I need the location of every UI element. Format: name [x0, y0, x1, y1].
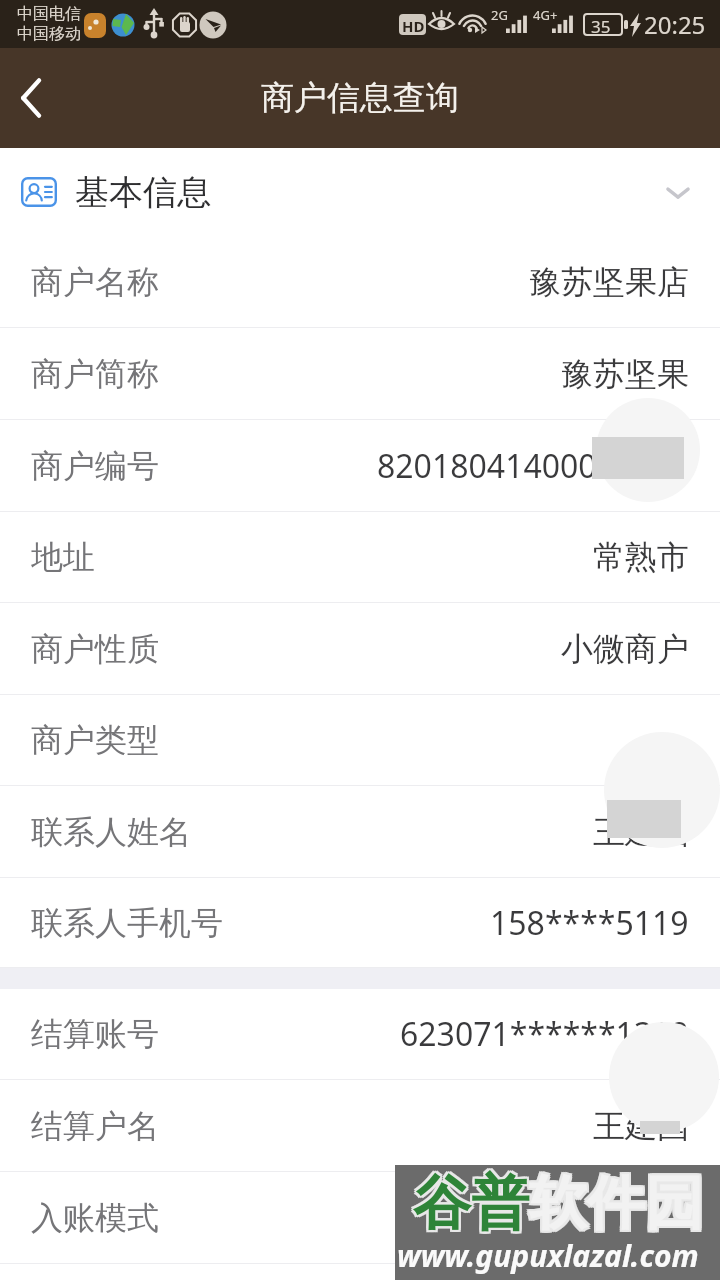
staticText: 商户信息查询 [261, 77, 459, 119]
staticText: 王建国 [593, 1106, 689, 1146]
staticText: 20:25 [644, 8, 706, 41]
staticText: 谷普 [415, 1167, 531, 1240]
staticText: 4G+ [533, 6, 558, 24]
button[interactable]: 地址 [0, 512, 720, 602]
staticText: 结算户名 [31, 1106, 159, 1146]
staticText: 联系人姓名 [31, 812, 191, 852]
button[interactable]: 结算账号 [0, 989, 720, 1079]
button[interactable]: 联系人姓名 [0, 786, 720, 877]
staticText: 豫苏坚果店 [529, 262, 689, 302]
button[interactable]: 基本信息 [0, 148, 720, 236]
staticText: 王建国 [593, 812, 689, 852]
staticText: 谷普 [411, 1165, 527, 1238]
button[interactable]: Collapse basic information [660, 174, 696, 210]
staticText: 小微商户 [561, 629, 689, 669]
staticText: 谷普 [413, 1165, 529, 1238]
staticText: 入账模式 [31, 1198, 159, 1238]
staticText: 2G [491, 6, 508, 24]
staticText: 谷普 [415, 1165, 531, 1238]
button[interactable]: 结算户名 [0, 1080, 720, 1171]
staticText: 商户简称 [31, 354, 159, 394]
staticText: 中国电信 [17, 4, 81, 24]
staticText: 商户性质 [31, 629, 159, 669]
staticText: 谷普 [411, 1169, 527, 1242]
staticText: 联系人手机号 [31, 903, 223, 943]
staticText: 谷普 [413, 1167, 529, 1240]
staticText: 谷普 [415, 1169, 531, 1242]
button[interactable]: 商户类型 [0, 695, 720, 785]
staticText: 商户编号 [31, 446, 159, 486]
button[interactable]: 商户简称 [0, 328, 720, 419]
button[interactable]: 联系人手机号 [0, 878, 720, 967]
staticText: 35 [591, 15, 611, 38]
staticText: 地址 [31, 537, 95, 577]
staticText: 623071******1312 [400, 1012, 689, 1056]
staticText: HD [402, 16, 425, 36]
staticText: 商户名称 [31, 262, 159, 302]
staticText: 软件园 [529, 1165, 703, 1238]
staticText: 基本信息 [75, 171, 211, 214]
staticText: 谷普 [413, 1169, 529, 1242]
button[interactable]: Back [0, 66, 64, 130]
staticText: 82018041400000123 [377, 444, 689, 488]
staticText: 软件园 [527, 1169, 701, 1242]
button[interactable]: 商户名称 [0, 236, 720, 327]
staticText: 中国移动 [17, 24, 81, 44]
staticText: 软件园 [527, 1165, 701, 1238]
staticText: 软件园 [531, 1165, 705, 1238]
staticText: 商户类型 [31, 720, 159, 760]
staticText: 软件园 [529, 1169, 703, 1242]
staticText: 软件园 [529, 1167, 703, 1240]
button[interactable]: 商户编号 [0, 420, 720, 511]
staticText: 豫苏坚果 [561, 354, 689, 394]
staticText: www.gupuxlazal.com [397, 1235, 699, 1276]
staticText: 软件园 [527, 1167, 701, 1240]
staticText: 谷普 [411, 1167, 527, 1240]
staticText: 软件园 [531, 1169, 705, 1242]
staticText: 软件园 [531, 1167, 705, 1240]
button[interactable]: 入账模式 [0, 1172, 720, 1263]
staticText: 常熟市 [593, 537, 689, 577]
button[interactable]: 商户性质 [0, 603, 720, 694]
staticText: 158****5119 [490, 901, 689, 945]
staticText: 结算账号 [31, 1014, 159, 1054]
